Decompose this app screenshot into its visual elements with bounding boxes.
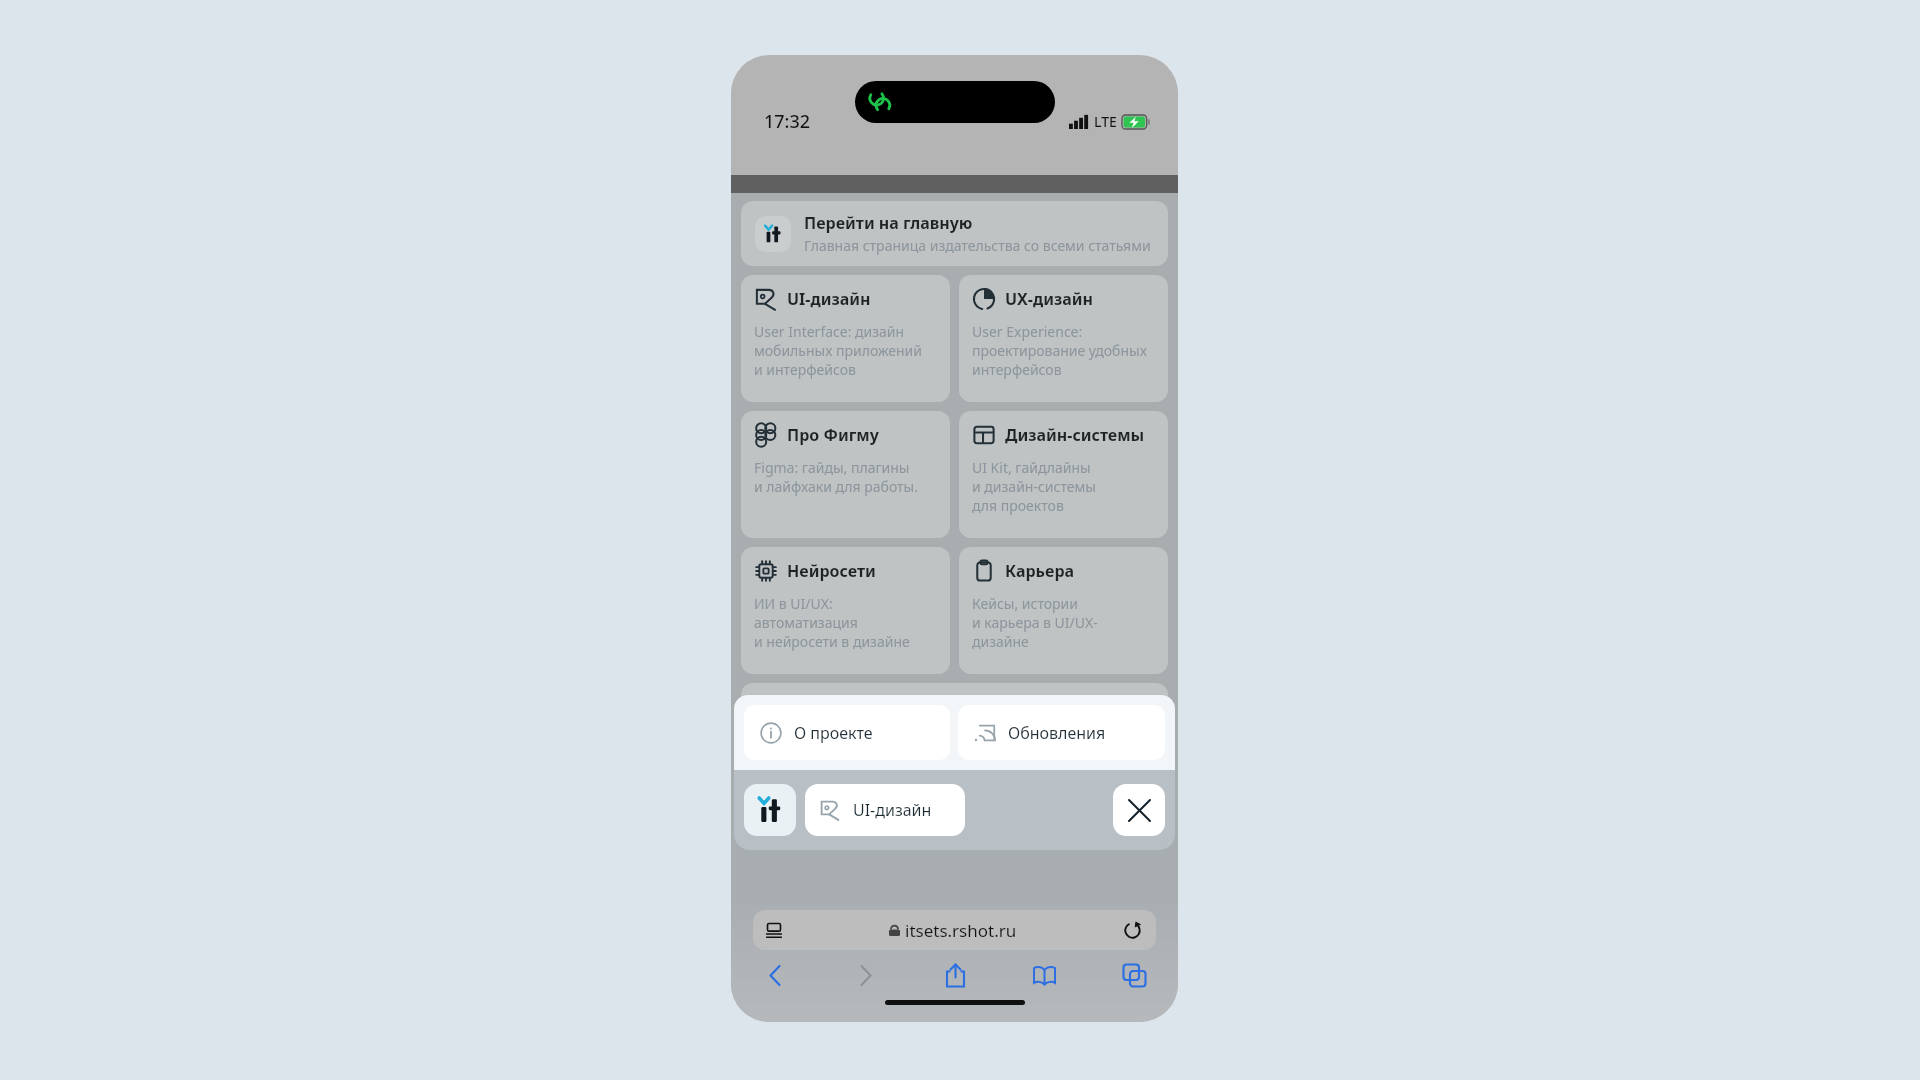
staticText: Figma: гайды, плагины xyxy=(754,458,910,477)
staticText: О проекте xyxy=(794,722,873,744)
button[interactable]: UI-дизайн xyxy=(805,784,965,836)
other: Page settings xyxy=(765,921,783,939)
staticText: Нейросети xyxy=(787,560,876,582)
staticText: 17:32 xyxy=(764,109,811,134)
button[interactable]: UX-дизайн xyxy=(959,275,1168,402)
staticText: проектирование удобных xyxy=(972,341,1147,360)
button[interactable]: Обновления xyxy=(958,705,1165,760)
staticText: Перейти на главную xyxy=(804,212,973,234)
staticText: UI-дизайн xyxy=(853,799,932,821)
staticText: дизайне xyxy=(972,632,1029,651)
button[interactable]: Back xyxy=(757,957,793,993)
staticText: автоматизация xyxy=(754,613,858,632)
staticText: и нейросети в дизайне xyxy=(754,632,910,651)
staticText: UI-дизайн xyxy=(787,288,871,310)
staticText: itsets.rshot.ru xyxy=(905,919,1017,942)
staticText: User Interface: дизайн xyxy=(754,322,905,341)
staticText: Карьера xyxy=(1005,560,1075,582)
staticText: для проектов xyxy=(972,496,1064,515)
button[interactable]: Карьера xyxy=(959,547,1168,674)
staticText: интерфейсов xyxy=(972,360,1062,379)
staticText: и интерфейсов xyxy=(754,360,856,379)
button[interactable]: Нейросети xyxy=(741,547,950,674)
button[interactable]: Перейти на главную xyxy=(741,201,1168,266)
staticText: и карьера в UI/UX- xyxy=(972,613,1098,632)
staticText: Про Фигму xyxy=(787,424,879,446)
staticText: мобильных приложений xyxy=(754,341,922,360)
staticText: UI Kit, гайдлайны xyxy=(972,458,1091,477)
button[interactable]: UI-дизайн xyxy=(741,275,950,402)
button[interactable]: Дизайн-системы xyxy=(959,411,1168,538)
button[interactable]: Следите в Telegram xyxy=(741,683,1168,748)
button[interactable]: О проекте xyxy=(744,705,950,760)
staticText: ИИ в UI/UX: xyxy=(754,594,833,613)
staticText: UX-дизайн xyxy=(1005,288,1093,310)
staticText: и лайфхаки для работы. xyxy=(754,477,918,496)
button[interactable]: Page settings xyxy=(753,910,1156,950)
staticText: LTE xyxy=(1094,112,1117,131)
button[interactable]: Close xyxy=(1113,784,1165,836)
staticText: Следите в Telegram xyxy=(804,694,964,716)
staticText: и дизайн-системы xyxy=(972,477,1096,496)
button[interactable]: Share xyxy=(937,957,973,993)
button[interactable]: Tabs xyxy=(1116,957,1152,993)
other: Reload xyxy=(1123,921,1142,940)
button[interactable]: Bookmarks xyxy=(1026,957,1062,993)
staticText: Главная страница издательства со всеми с… xyxy=(804,236,1151,255)
button[interactable]: Про Фигму xyxy=(741,411,950,538)
button[interactable]: Forward xyxy=(847,957,883,993)
staticText: User Experience: xyxy=(972,322,1083,341)
staticText: Обновления xyxy=(1008,722,1106,744)
button[interactable]: Site icon xyxy=(744,784,796,836)
staticText: Дизайн-системы xyxy=(1005,424,1145,446)
staticText: Мгновенно получайте анонсы лучших статей xyxy=(804,718,1113,737)
staticText: Кейсы, истории xyxy=(972,594,1078,613)
